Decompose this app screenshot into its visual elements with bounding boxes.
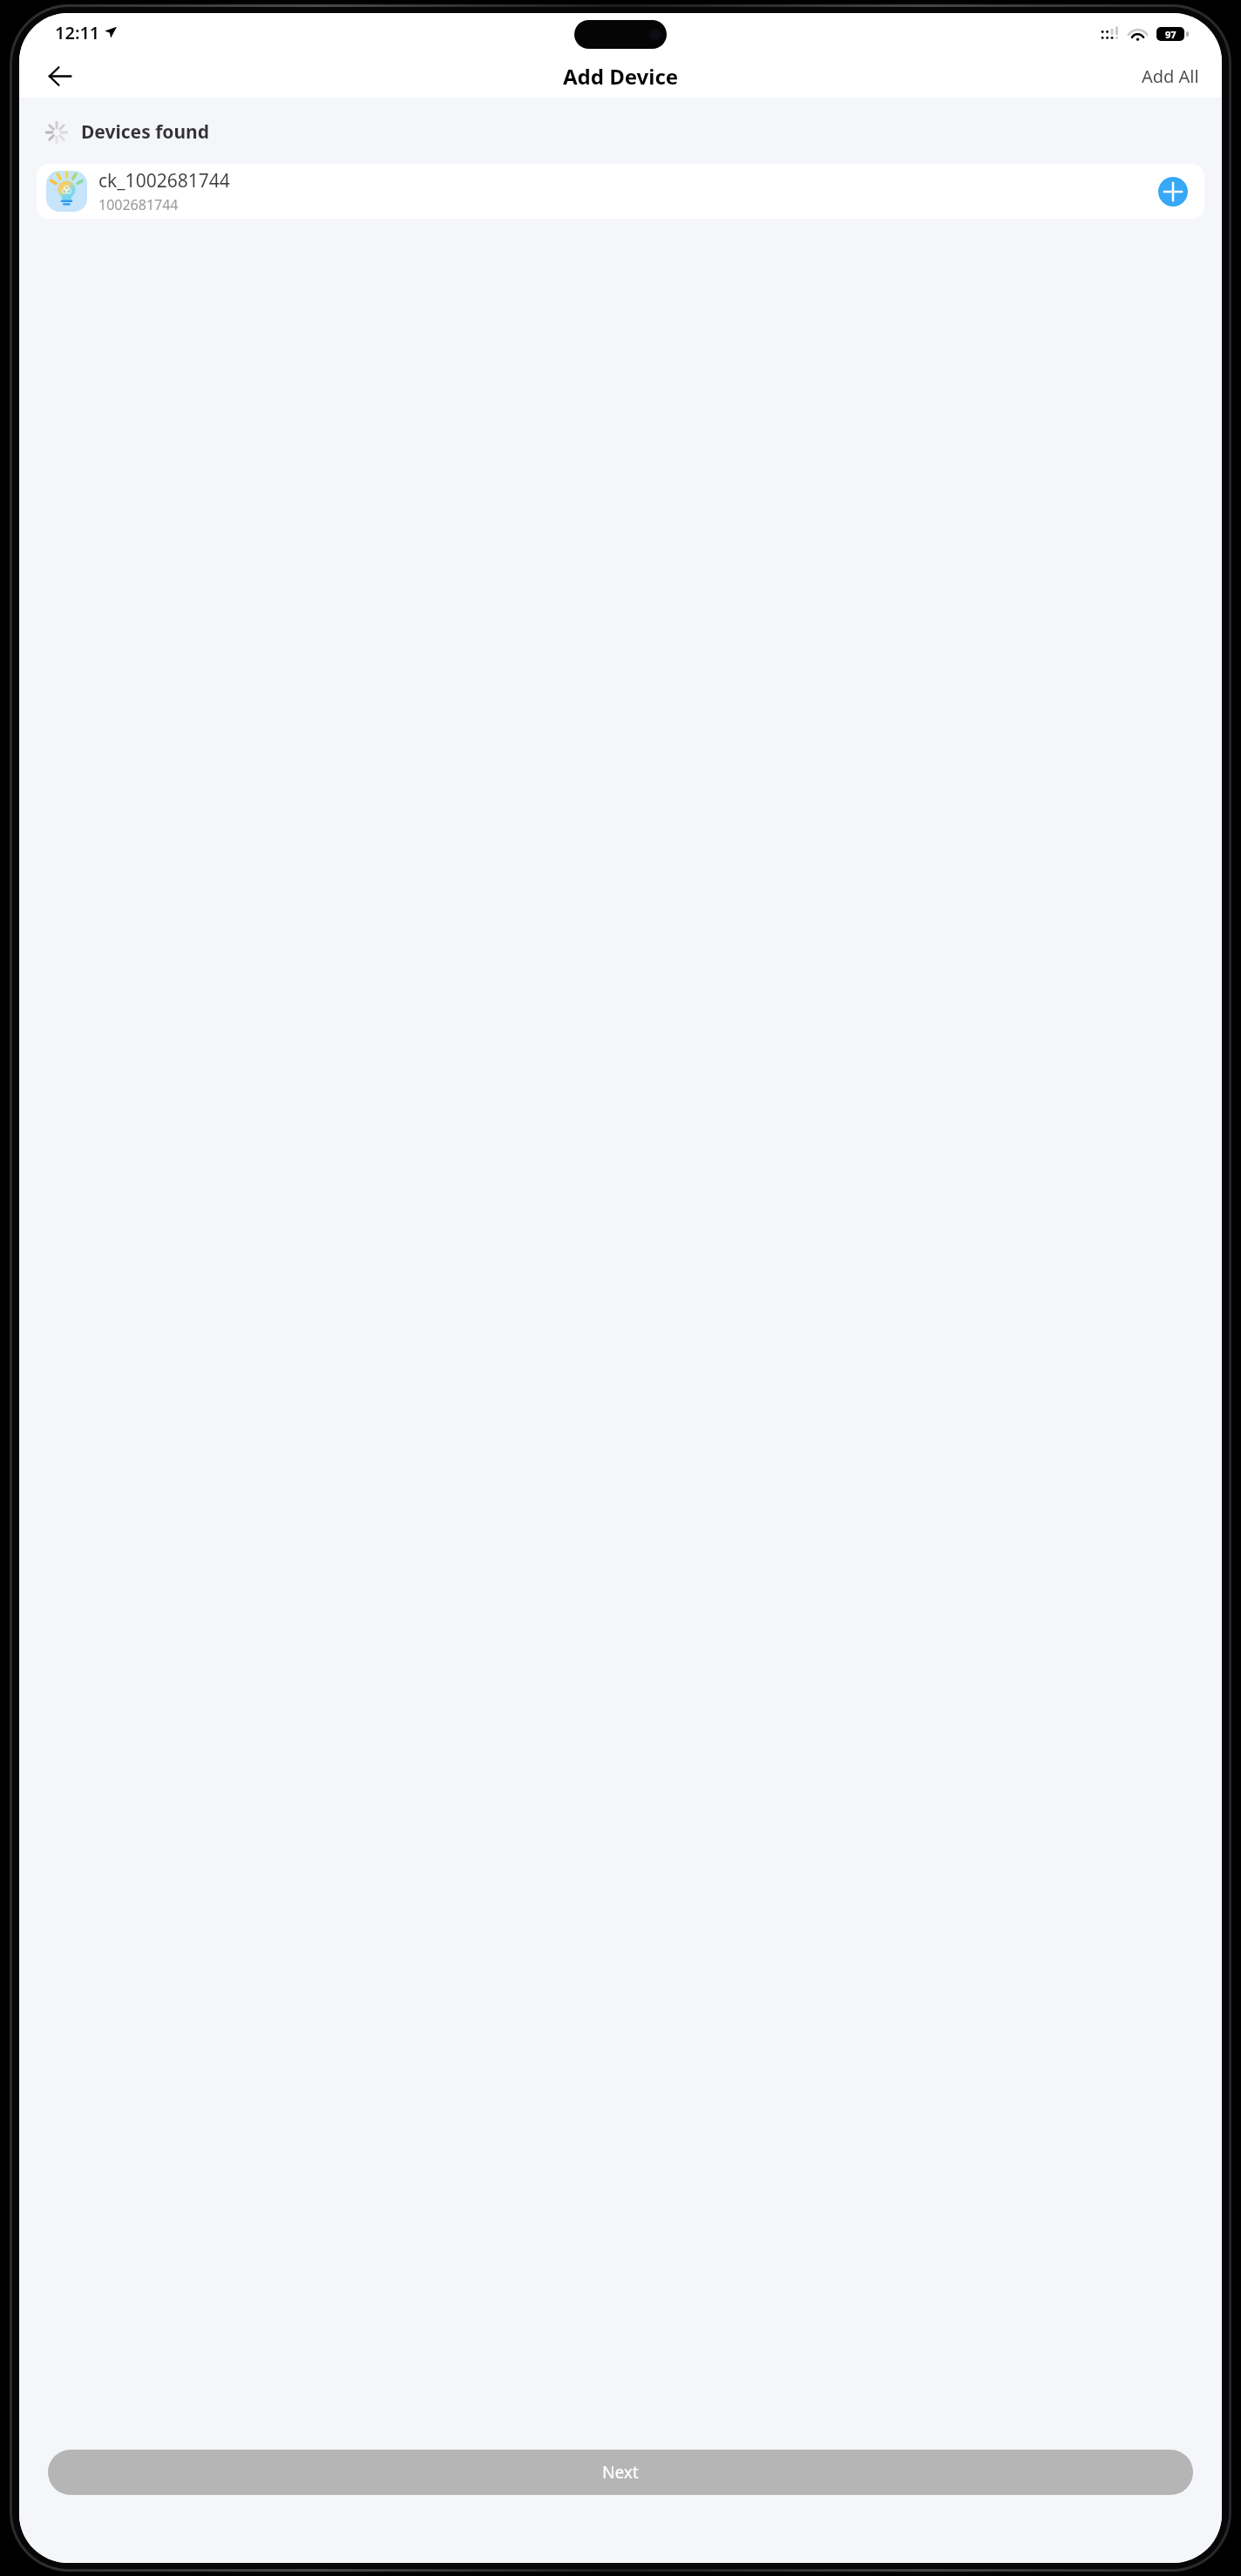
staticText: 97 (1165, 28, 1177, 41)
staticText: 12:11 (55, 21, 100, 44)
button[interactable]: Next (48, 2450, 1193, 2495)
button[interactable]: Add All (1131, 58, 1210, 95)
staticText: Add Device (563, 62, 679, 91)
staticText: Next (602, 2461, 639, 2484)
staticText: Add All (1142, 64, 1199, 88)
staticText: Devices found (81, 119, 209, 145)
button[interactable]: ck_1002681744 (37, 164, 1204, 219)
button[interactable]: Add device (1156, 174, 1190, 209)
staticText: 1002681744 (98, 195, 179, 214)
button[interactable]: Back (40, 57, 78, 95)
staticText: ck_1002681744 (98, 168, 230, 193)
